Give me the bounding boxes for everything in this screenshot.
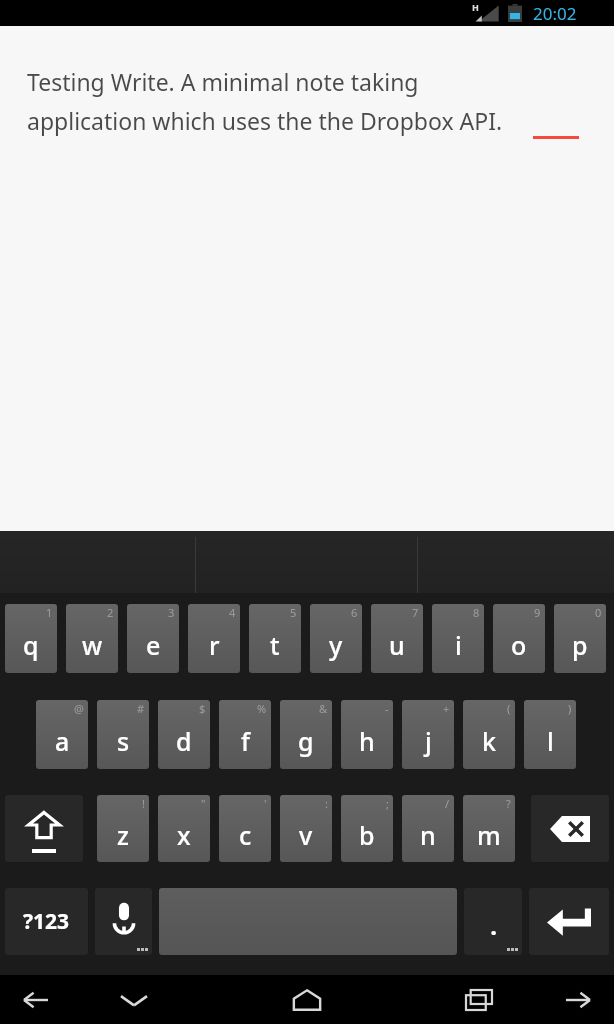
staticText: v [299, 818, 313, 852]
button[interactable]: 6 [310, 604, 362, 673]
staticText: t [270, 628, 280, 662]
staticText: a [55, 724, 70, 758]
button[interactable]: ?123 [5, 888, 88, 955]
staticText: j [425, 724, 432, 758]
staticText: 4 [229, 605, 236, 620]
staticText: b [359, 818, 375, 852]
staticText: u [389, 628, 405, 662]
staticText: w [82, 628, 103, 662]
staticText: 0 [595, 605, 602, 620]
staticText: & [319, 701, 328, 716]
staticText: % [257, 701, 267, 716]
button[interactable]: Voice input [95, 888, 152, 955]
button[interactable]: ( [463, 700, 515, 769]
staticText: k [482, 724, 496, 758]
staticText: " [201, 796, 206, 811]
staticText: 6 [351, 605, 358, 620]
staticText: q [23, 628, 39, 662]
staticText: f [241, 724, 250, 758]
staticText: n [420, 818, 436, 852]
staticText: - [385, 701, 389, 716]
button[interactable]: : [280, 795, 332, 862]
button[interactable]: & [280, 700, 332, 769]
staticText: $ [199, 701, 206, 716]
staticText: ?123 [23, 907, 70, 936]
staticText: s [117, 724, 130, 758]
button[interactable]: . [464, 888, 522, 955]
button[interactable]: 5 [249, 604, 301, 673]
button[interactable]: - [341, 700, 393, 769]
button[interactable]: Enter [529, 888, 609, 955]
button[interactable]: 7 [371, 604, 423, 673]
button[interactable]: Forward [554, 983, 602, 1017]
staticText: l [547, 724, 554, 758]
staticText: Testing Write. A minimal note taking [27, 66, 419, 97]
button[interactable]: Recent apps [455, 983, 503, 1017]
button[interactable]: + [402, 700, 454, 769]
staticText: h [359, 724, 375, 758]
button[interactable]: Home [283, 981, 331, 1019]
staticText: @ [74, 701, 84, 716]
staticText: 1 [46, 605, 53, 620]
button[interactable]: % [219, 700, 271, 769]
staticText: g [298, 724, 314, 758]
button[interactable]: ' [219, 795, 271, 862]
staticText: 20:02 [533, 2, 577, 25]
staticText: 7 [412, 605, 419, 620]
staticText: d [176, 724, 192, 758]
staticText: ) [568, 701, 572, 716]
button[interactable]: ; [341, 795, 393, 862]
staticText: o [511, 628, 527, 662]
staticText: z [117, 818, 129, 852]
staticText: ( [507, 701, 511, 716]
staticText: . [490, 909, 497, 942]
staticText: i [455, 628, 462, 662]
button[interactable]: ? [463, 795, 515, 862]
staticText: e [146, 628, 161, 662]
staticText: 9 [534, 605, 541, 620]
staticText: H [472, 1, 479, 13]
staticText: ? [506, 796, 511, 811]
staticText: : [325, 796, 328, 811]
staticText: m [477, 818, 501, 852]
staticText: ' [264, 796, 267, 811]
staticText: 5 [290, 605, 297, 620]
button[interactable]: / [402, 795, 454, 862]
staticText: / [445, 796, 450, 811]
button[interactable]: " [158, 795, 210, 862]
button[interactable]: # [97, 700, 149, 769]
staticText: p [572, 628, 588, 662]
button[interactable]: 8 [432, 604, 484, 673]
button[interactable]: Backspace [531, 795, 609, 862]
staticText: ! [142, 796, 145, 811]
staticText: y [329, 628, 343, 662]
button[interactable]: Shift [5, 795, 83, 862]
button[interactable]: 1 [5, 604, 57, 673]
staticText: 2 [107, 605, 114, 620]
staticText: application which uses the the Dropbox A… [27, 105, 503, 136]
button[interactable]: 9 [493, 604, 545, 673]
button[interactable]: 0 [554, 604, 606, 673]
staticText: 3 [168, 605, 175, 620]
staticText: # [137, 701, 145, 716]
button[interactable]: $ [158, 700, 210, 769]
button[interactable]: Back [12, 983, 60, 1017]
button[interactable]: 4 [188, 604, 240, 673]
button[interactable]: ) [524, 700, 576, 769]
staticText: ; [386, 796, 389, 811]
button[interactable]: 3 [127, 604, 179, 673]
staticText: + [443, 701, 450, 716]
button[interactable]: 2 [66, 604, 118, 673]
button[interactable]: Hide keyboard [110, 983, 158, 1017]
button[interactable]: @ [36, 700, 88, 769]
staticText: c [239, 818, 252, 852]
button[interactable]: ! [97, 795, 149, 862]
staticText: 8 [473, 605, 480, 620]
staticText: r [209, 628, 220, 662]
staticText: x [177, 818, 191, 852]
